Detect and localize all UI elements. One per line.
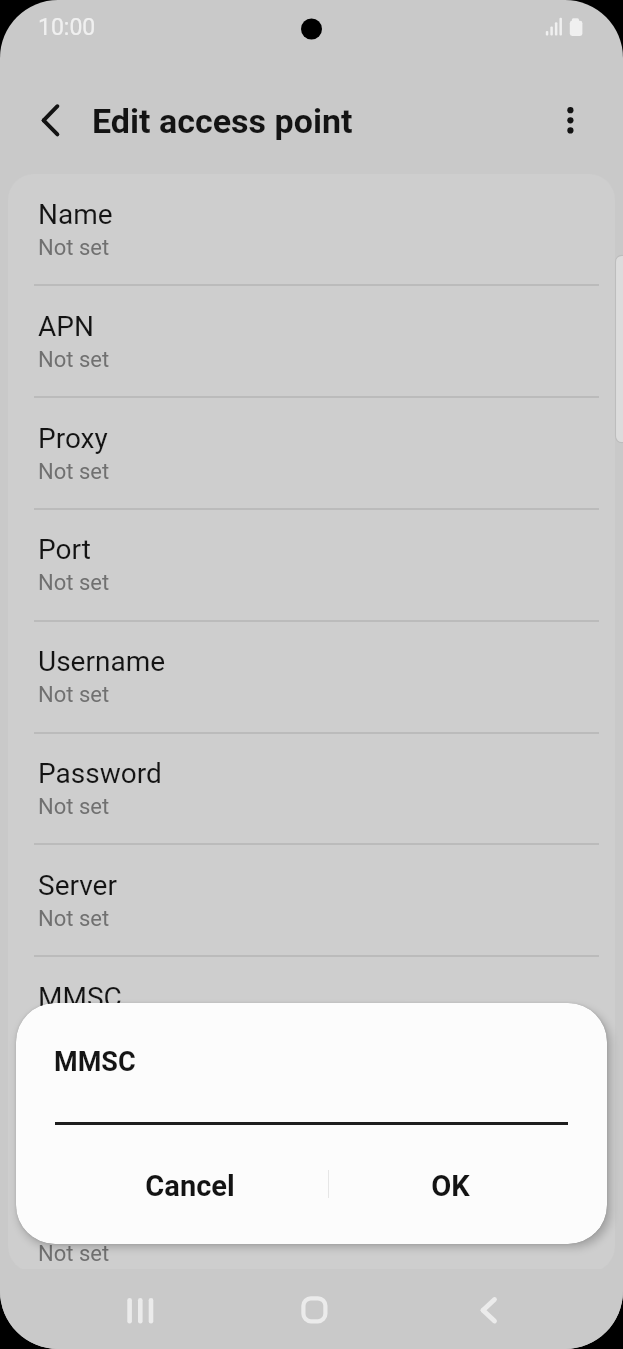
staticText: MMSC [38, 981, 122, 1014]
staticText: Proxy [38, 422, 108, 455]
button[interactable]: Password [8, 733, 615, 845]
staticText: OK [431, 1169, 470, 1203]
button[interactable]: Name [8, 174, 615, 286]
staticText: Not set [38, 1241, 110, 1267]
staticText: APN [38, 310, 94, 343]
button[interactable]: Proxy [8, 398, 615, 510]
staticText: Not set [38, 906, 110, 932]
staticText: Not set [38, 459, 110, 485]
button[interactable]: Port [8, 509, 615, 621]
button[interactable]: Back [455, 1273, 535, 1345]
staticText: MMS proxy [38, 1093, 179, 1126]
button[interactable]: MMSC [8, 957, 615, 1069]
staticText: Not set [38, 570, 110, 596]
staticText: Not set [38, 235, 110, 261]
button[interactable]: Server [8, 845, 615, 957]
staticText: Not set [38, 794, 110, 820]
button[interactable]: OK [344, 1151, 557, 1221]
staticText: Not set [38, 347, 110, 373]
button[interactable]: MMS proxy [8, 1069, 615, 1181]
staticText: Server [38, 869, 117, 902]
staticText: Password [38, 757, 162, 790]
button[interactable]: MMS port [8, 1180, 615, 1272]
button[interactable]: More options [548, 98, 593, 143]
staticText: MMSC [54, 1046, 136, 1078]
button[interactable]: Cancel [38, 1151, 342, 1221]
staticText: 10:00 [38, 14, 96, 41]
staticText: Not set [38, 682, 110, 708]
button[interactable]: APN [8, 286, 615, 398]
staticText: Cancel [145, 1169, 235, 1203]
button[interactable]: Navigate up [27, 96, 75, 144]
staticText: Username [38, 645, 166, 678]
button[interactable]: Username [8, 621, 615, 733]
button[interactable]: Recent apps [100, 1273, 180, 1345]
staticText: Edit access point [92, 101, 353, 141]
button[interactable]: Home [274, 1273, 354, 1345]
staticText: Port [38, 533, 91, 566]
staticText: Name [38, 198, 113, 231]
